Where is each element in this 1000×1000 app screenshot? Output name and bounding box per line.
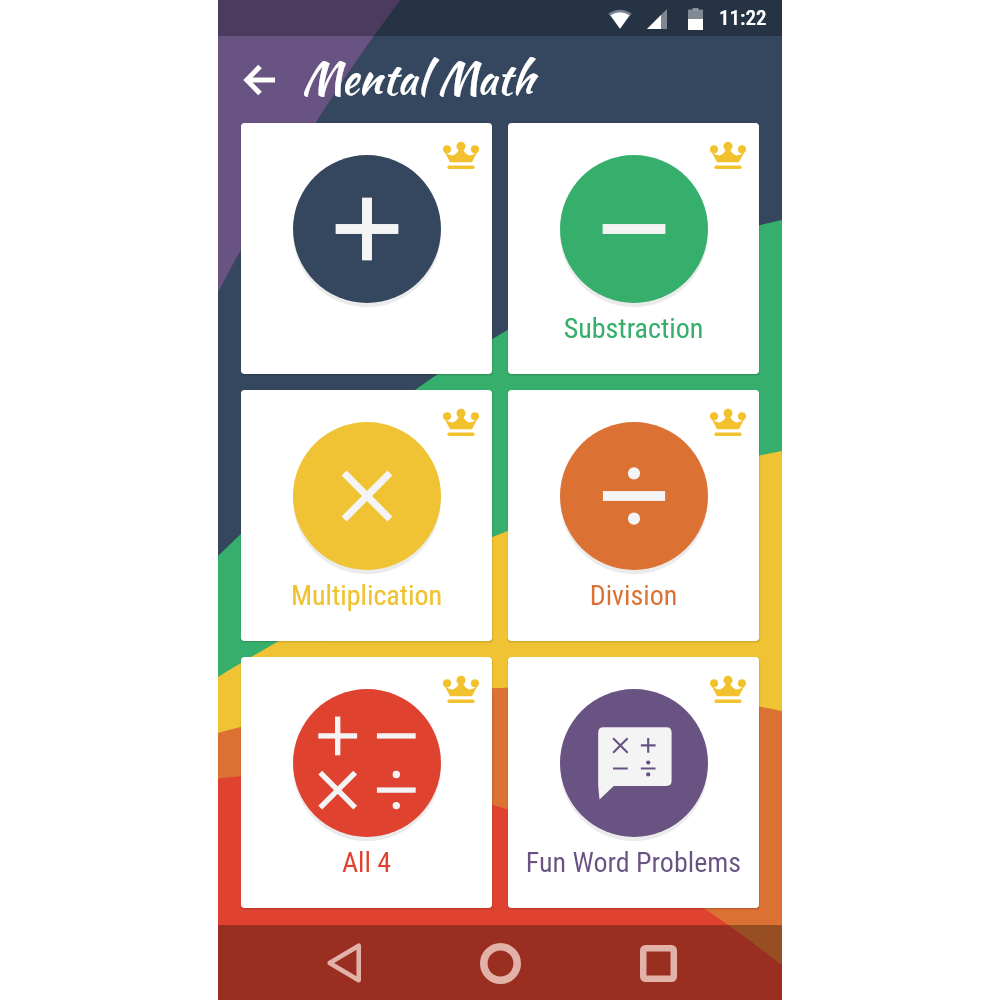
staticText: Multiplication [241, 579, 492, 612]
staticText: All 4 [241, 846, 492, 879]
button[interactable]: Multiplication [241, 390, 492, 641]
button[interactable]: Back [306, 926, 380, 1000]
button[interactable]: Division [508, 390, 759, 641]
staticText: 11:22 [719, 6, 767, 31]
button[interactable]: All 4 [241, 657, 492, 908]
staticText: Division [508, 579, 759, 612]
staticText: Mental Math [302, 47, 534, 109]
button[interactable]: Recents [621, 926, 695, 1000]
button[interactable] [241, 123, 492, 374]
button[interactable]: Substraction [508, 123, 759, 374]
staticText: Fun Word Problems [508, 846, 759, 879]
button[interactable]: Fun Word Problems [508, 657, 759, 908]
button[interactable]: Home [463, 926, 537, 1000]
button[interactable]: Back [232, 52, 288, 108]
staticText: Substraction [508, 312, 759, 345]
